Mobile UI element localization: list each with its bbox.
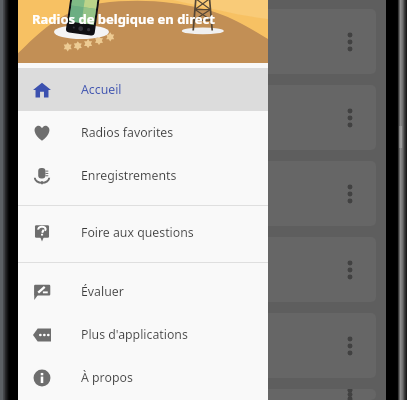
staticText: Foire aux questions (81, 224, 194, 241)
button[interactable]: À propos (18, 356, 268, 399)
button[interactable]: More options (338, 334, 362, 358)
button[interactable]: More options (338, 258, 362, 282)
staticText: Radios favorites (81, 124, 174, 141)
staticText: Accueil (81, 81, 122, 98)
staticText: Radios de belgique en direct (32, 10, 215, 28)
button[interactable]: More options (338, 182, 362, 206)
button[interactable]: More options (30, 237, 376, 302)
button[interactable]: Enregistrements (18, 154, 268, 197)
button[interactable]: More options (338, 106, 362, 130)
button[interactable]: More options (30, 389, 376, 400)
button[interactable]: Évaluer (18, 270, 268, 313)
button[interactable]: Accueil (18, 68, 268, 111)
button[interactable]: More options (338, 30, 362, 54)
button[interactable]: More options (30, 313, 376, 378)
staticText: Enregistrements (81, 167, 177, 184)
button[interactable]: Plus d'applications (18, 313, 268, 356)
button[interactable]: More options (338, 389, 362, 400)
button[interactable]: More options (30, 85, 376, 150)
button[interactable]: More options (30, 161, 376, 226)
staticText: Plus d'applications (81, 326, 188, 343)
staticText: Évaluer (81, 283, 124, 300)
button[interactable]: Radios favorites (18, 111, 268, 154)
button[interactable]: More options (30, 9, 376, 74)
staticText: À propos (81, 369, 133, 386)
button[interactable]: Foire aux questions (18, 211, 268, 254)
